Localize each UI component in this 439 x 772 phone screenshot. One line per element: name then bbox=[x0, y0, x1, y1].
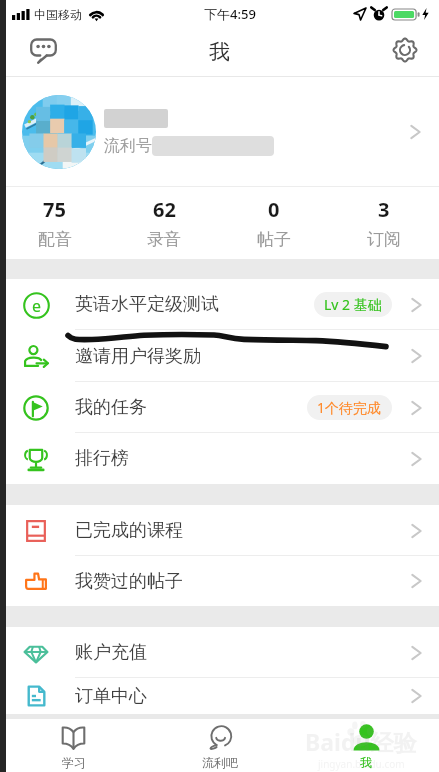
button[interactable]: 订单中心 bbox=[0, 678, 439, 714]
staticText: 帖子 bbox=[257, 229, 291, 250]
button[interactable]: 我赞过的帖子 bbox=[0, 556, 439, 606]
button[interactable]: 学习 bbox=[0, 722, 147, 772]
staticText: 流利吧 bbox=[202, 755, 238, 770]
staticText: jingyan.baidu.com bbox=[318, 757, 405, 771]
staticText: 录音 bbox=[147, 229, 181, 250]
staticText: 75 bbox=[43, 196, 66, 223]
staticText: 账户充值 bbox=[75, 641, 147, 664]
staticText: 邀请用户得奖励 bbox=[75, 345, 201, 368]
button[interactable]: 我的任务 bbox=[0, 382, 439, 433]
button[interactable]: 账户充值 bbox=[0, 627, 439, 678]
staticText: 下午4:59 bbox=[204, 5, 256, 23]
staticText: 订阅 bbox=[367, 229, 401, 250]
staticText: 学习 bbox=[62, 755, 86, 770]
button[interactable]: 0 bbox=[219, 187, 329, 259]
staticText: 62 bbox=[153, 196, 176, 223]
staticText: 排行榜 bbox=[75, 447, 129, 470]
staticText: 我赞过的帖子 bbox=[75, 570, 183, 593]
staticText: Baidu经验 bbox=[305, 726, 417, 757]
button[interactable]: 流利号 bbox=[0, 77, 439, 186]
button[interactable]: e bbox=[0, 279, 439, 330]
staticText: 流利号 bbox=[104, 136, 152, 156]
button[interactable]: 排行榜 bbox=[0, 433, 439, 484]
staticText: 0 bbox=[268, 196, 280, 223]
button[interactable]: 75 bbox=[0, 187, 109, 259]
button[interactable]: 邀请用户得奖励 bbox=[0, 330, 439, 382]
staticText: e bbox=[32, 295, 42, 317]
staticText: 订单中心 bbox=[75, 685, 147, 708]
button[interactable]: 3 bbox=[329, 187, 439, 259]
staticText: 我 bbox=[360, 755, 372, 770]
staticText: Lv 2 基础 bbox=[324, 295, 382, 314]
staticText: 我 bbox=[209, 39, 230, 65]
button[interactable]: Messages bbox=[26, 33, 60, 67]
staticText: 英语水平定级测试 bbox=[75, 293, 219, 316]
staticText: 我的任务 bbox=[75, 396, 147, 419]
button[interactable]: 流利吧 bbox=[147, 722, 293, 772]
button[interactable]: 我 bbox=[293, 722, 439, 772]
staticText: 已完成的课程 bbox=[75, 519, 183, 542]
staticText: 3 bbox=[378, 196, 390, 223]
staticText: 配音 bbox=[38, 229, 72, 250]
button[interactable]: Settings bbox=[388, 33, 422, 67]
staticText: 1个待完成 bbox=[317, 398, 382, 417]
button[interactable]: 62 bbox=[109, 187, 219, 259]
staticText: 中国移动 bbox=[34, 7, 82, 22]
button[interactable]: 已完成的课程 bbox=[0, 505, 439, 556]
